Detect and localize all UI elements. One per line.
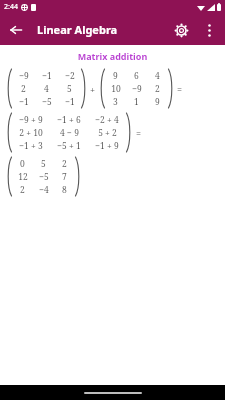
staticText: −9 (132, 83, 142, 95)
staticText: 6 (134, 70, 139, 82)
staticText: 10 (111, 83, 121, 95)
staticText: 5 + 2 (98, 127, 117, 139)
staticText: 2 (155, 83, 160, 95)
staticText: 5 (67, 83, 72, 95)
staticText: −1 (65, 96, 75, 108)
staticText: Linear Algebra (37, 22, 166, 37)
staticText: −5 + 1 (57, 140, 81, 152)
staticText: −1 (19, 96, 29, 108)
staticText: −5 (39, 171, 49, 183)
staticText: 2 (21, 83, 26, 95)
staticText: 8 (62, 184, 67, 196)
staticText: 3 (113, 96, 118, 108)
button[interactable]: Home (84, 392, 142, 394)
staticText: 2 + 10 (19, 127, 43, 139)
staticText: −4 (39, 184, 49, 196)
staticText: −1 (42, 70, 52, 82)
staticText: = (136, 127, 142, 139)
staticText: −1 + 6 (57, 114, 81, 126)
staticText: = (177, 83, 183, 95)
staticText: Matrix addition (0, 50, 225, 62)
staticText: 9 (155, 96, 160, 108)
staticText: −1 + 3 (19, 140, 43, 152)
staticText: −2 + 4 (95, 114, 119, 126)
staticText: 4 (155, 70, 160, 82)
staticText: 2:44 (4, 2, 18, 12)
staticText: −9 (19, 70, 29, 82)
staticText: 5 (41, 158, 46, 170)
staticText: 0 (20, 158, 25, 170)
staticText: 2 (62, 158, 67, 170)
button[interactable]: Back (0, 14, 31, 45)
staticText: 2 (20, 184, 25, 196)
staticText: 12 (18, 171, 28, 183)
staticText: −9 + 9 (19, 114, 43, 126)
button[interactable]: More options (196, 17, 222, 43)
staticText: −5 (42, 96, 52, 108)
staticText: 4 − 9 (60, 127, 79, 139)
staticText: −1 + 9 (95, 140, 119, 152)
staticText: 7 (62, 171, 67, 183)
button[interactable]: Settings (166, 15, 196, 45)
staticText: 1 (134, 96, 139, 108)
staticText: 4 (44, 83, 49, 95)
staticText: 9 (113, 70, 118, 82)
staticText: + (90, 83, 96, 95)
staticText: −2 (65, 70, 75, 82)
